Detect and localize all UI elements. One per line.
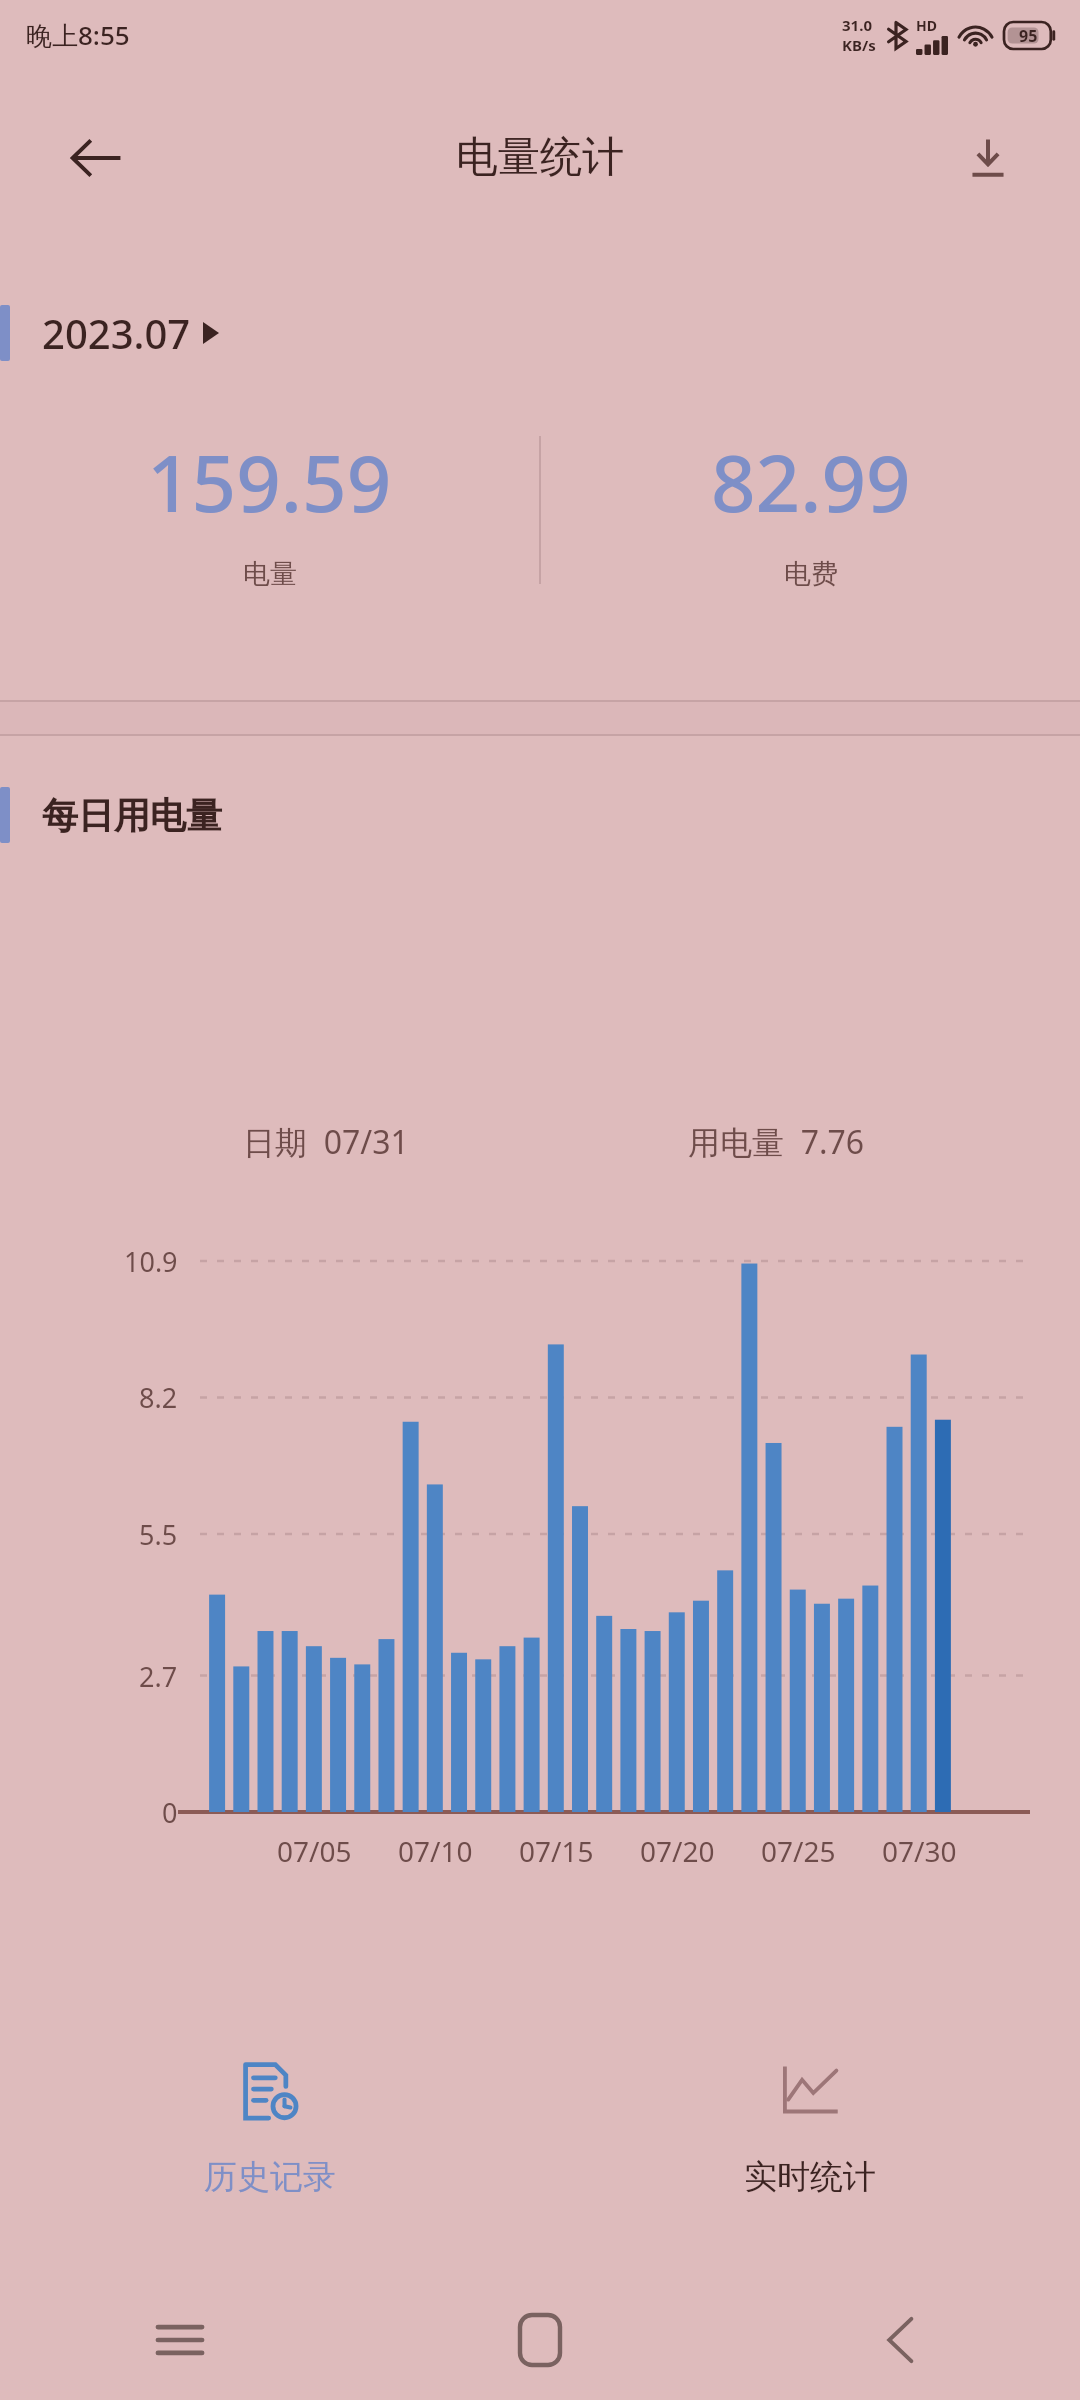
staticText: 07/10 bbox=[398, 1832, 473, 1870]
staticText: 82.99 bbox=[711, 429, 911, 535]
staticText: 07/25 bbox=[761, 1832, 836, 1870]
staticText: 07/05 bbox=[277, 1832, 352, 1870]
staticText: 历史记录 bbox=[204, 2156, 336, 2198]
staticText: 8.2 bbox=[139, 1379, 178, 1416]
button[interactable]: 历史记录 bbox=[0, 2060, 540, 2260]
button[interactable]: 返回 bbox=[54, 116, 138, 200]
staticText: 电量统计 bbox=[456, 131, 624, 184]
staticText: 0 bbox=[162, 1794, 178, 1831]
button[interactable]: 实时统计 bbox=[540, 2060, 1080, 2260]
staticText: 每日用电量 bbox=[42, 793, 222, 838]
staticText: 2.7 bbox=[139, 1658, 178, 1695]
staticText: 10.9 bbox=[124, 1243, 178, 1280]
staticText: 07/15 bbox=[519, 1832, 594, 1870]
button[interactable]: 下载 bbox=[946, 116, 1030, 200]
staticText: 用电量 7.76 bbox=[688, 1120, 865, 1164]
button[interactable]: 2023.07 bbox=[0, 290, 1080, 376]
staticText: 日期 07/31 bbox=[243, 1120, 409, 1164]
button[interactable]: 159.59 bbox=[0, 429, 539, 591]
staticText: 5.5 bbox=[139, 1516, 178, 1553]
staticText: 07/20 bbox=[640, 1832, 715, 1870]
staticText: 07/30 bbox=[882, 1832, 957, 1870]
staticText: KB/s bbox=[842, 35, 876, 55]
button[interactable]: 主屏幕 bbox=[360, 2280, 720, 2400]
staticText: 159.59 bbox=[147, 429, 392, 535]
staticText: HD bbox=[916, 16, 937, 35]
staticText: 2023.07 bbox=[42, 306, 191, 360]
staticText: 晚上8:55 bbox=[26, 17, 130, 53]
button[interactable]: 返回 bbox=[720, 2280, 1080, 2400]
staticText: 电量 bbox=[243, 557, 297, 591]
button[interactable]: 82.99 bbox=[541, 429, 1080, 591]
staticText: 电费 bbox=[784, 557, 838, 591]
staticText: 实时统计 bbox=[744, 2156, 876, 2198]
staticText: 31.0 bbox=[842, 15, 872, 35]
button[interactable]: 最近任务 bbox=[0, 2280, 360, 2400]
staticText: 95 bbox=[1019, 25, 1038, 47]
